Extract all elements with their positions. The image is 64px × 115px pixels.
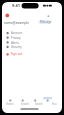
button[interactable]: Notifications bbox=[0, 41, 64, 46]
staticText: Home bbox=[6, 102, 14, 106]
staticText: Manage bbox=[40, 20, 52, 24]
button[interactable]: You bbox=[48, 98, 64, 107]
button[interactable]: Account bbox=[0, 31, 64, 36]
button[interactable]: Home bbox=[0, 98, 16, 107]
button[interactable]: Sign out bbox=[0, 55, 64, 60]
button[interactable]: Search bbox=[16, 98, 32, 107]
button[interactable]: Account avatar bbox=[0, 11, 28, 20]
staticText: Saved bbox=[35, 102, 43, 106]
staticText: Alerts bbox=[11, 41, 19, 45]
staticText: Search bbox=[21, 102, 30, 106]
staticText: Account bbox=[11, 31, 22, 35]
button[interactable]: Privacy bbox=[0, 36, 64, 41]
staticText: You bbox=[52, 102, 57, 106]
button[interactable]: Saved bbox=[32, 98, 48, 107]
staticText: 9:41 bbox=[12, 3, 20, 8]
button[interactable]: Security bbox=[0, 46, 64, 51]
button[interactable]: Manage your account bbox=[36, 20, 50, 26]
staticText: name@example bbox=[4, 20, 29, 24]
staticText: Security bbox=[11, 45, 22, 49]
button[interactable]: More options bbox=[56, 11, 64, 20]
staticText: Privacy bbox=[11, 36, 21, 40]
staticText: Sign out bbox=[11, 52, 23, 56]
